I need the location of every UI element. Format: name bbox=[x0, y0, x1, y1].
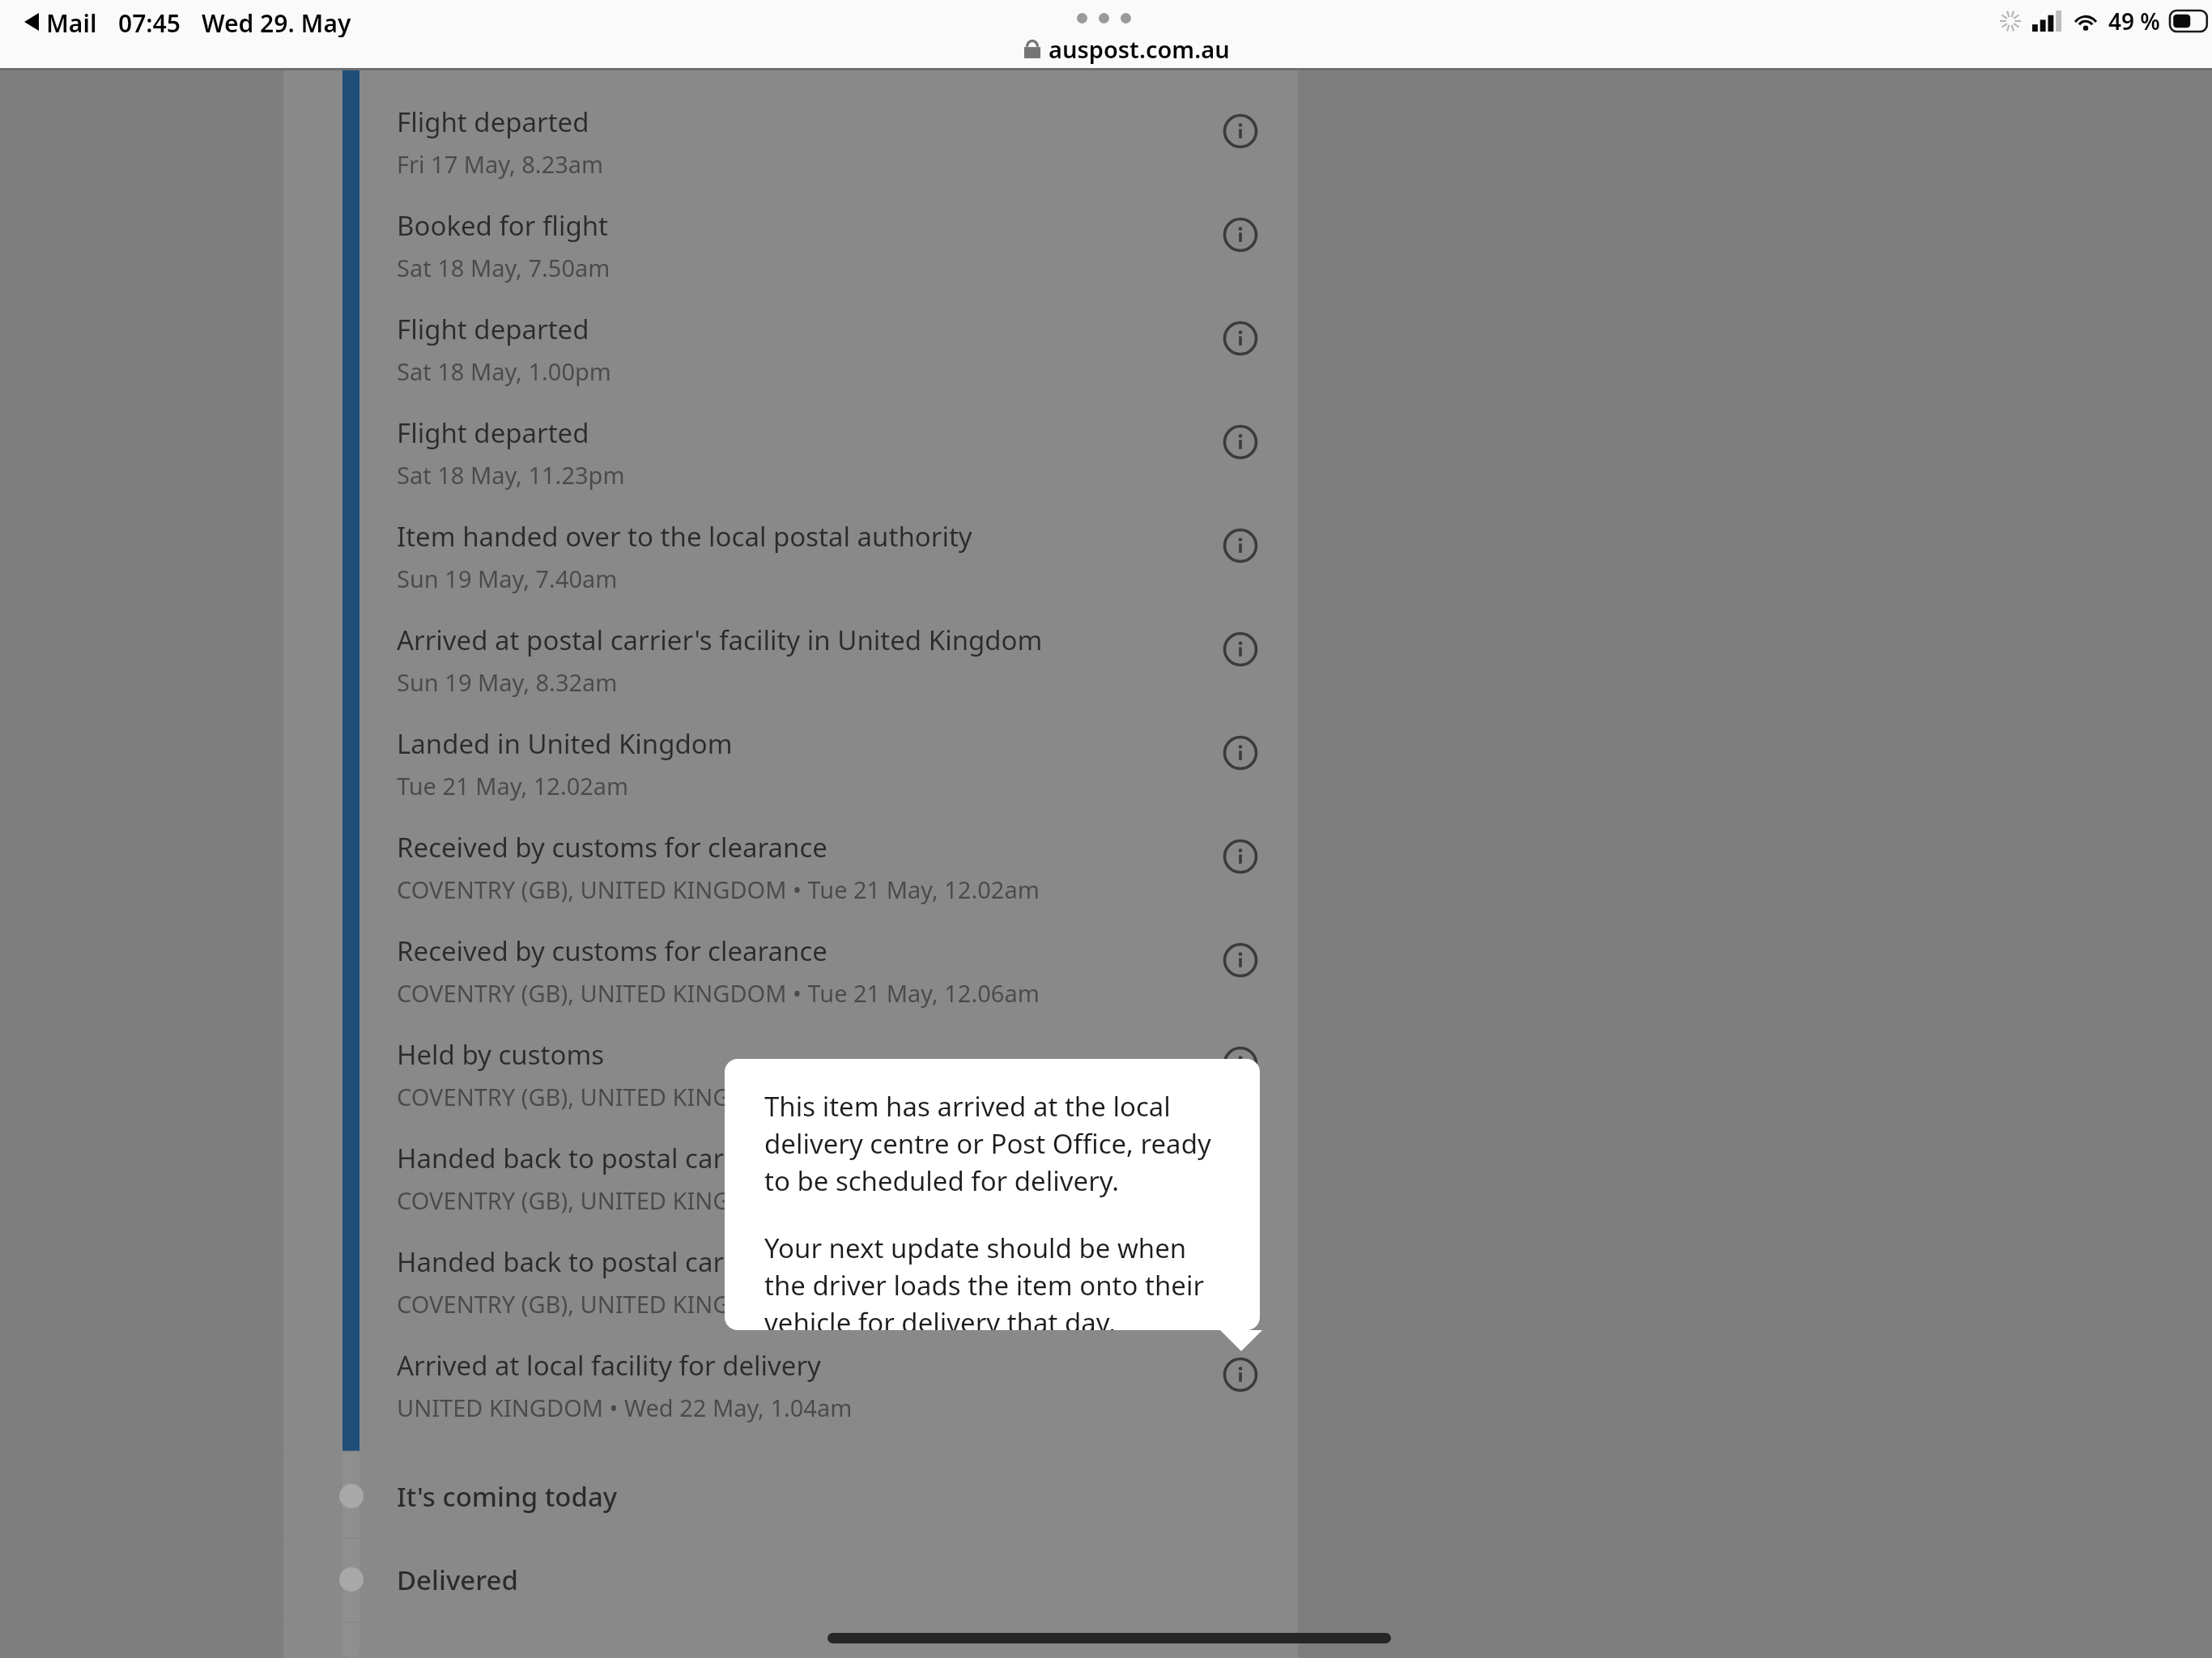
button[interactable]: More information bbox=[1222, 527, 1259, 564]
button[interactable]: This item has arrived at the local deliv… bbox=[725, 1059, 1260, 1330]
staticText: COVENTRY (GB), UNITED KINGDOM • Tue 21 M… bbox=[397, 874, 1040, 905]
button[interactable]: More information bbox=[1222, 631, 1259, 668]
button[interactable]: Flight departed bbox=[359, 406, 1298, 510]
button[interactable]: Booked for flight bbox=[359, 199, 1298, 303]
button[interactable]: Held by customs bbox=[359, 1028, 1298, 1132]
button[interactable]: Handed back to postal carrier fo bbox=[359, 1132, 1298, 1235]
button[interactable]: More information bbox=[1222, 216, 1259, 253]
button[interactable]: More information bbox=[1222, 1045, 1259, 1082]
staticText: Fri 17 May, 8.23am bbox=[397, 148, 604, 180]
button[interactable]: It's coming today bbox=[359, 1454, 1298, 1538]
staticText: Handed back to postal carrier fo bbox=[397, 1243, 801, 1280]
staticText: COVENTRY (GB), UNITED KINGDOM bbox=[397, 1288, 787, 1320]
staticText: It's coming today bbox=[397, 1478, 618, 1515]
staticText: Sat 18 May, 1.00pm bbox=[397, 355, 611, 387]
staticText: Your next update should be when the driv… bbox=[764, 1230, 1227, 1330]
staticText: 07:45 bbox=[118, 6, 181, 37]
staticText: Mail bbox=[46, 6, 97, 37]
button[interactable]: Landed in United Kingdom bbox=[359, 717, 1298, 821]
staticText: Sat 18 May, 11.23pm bbox=[397, 459, 625, 491]
staticText: Delivered bbox=[397, 1562, 518, 1598]
staticText: Arrived at postal carrier's facility in … bbox=[397, 622, 1043, 658]
staticText: COVENTRY (GB), UNITED KINGDOM bbox=[397, 1081, 787, 1112]
staticText: Received by customs for clearance bbox=[397, 933, 827, 969]
button[interactable]: Delivered bbox=[359, 1537, 1298, 1622]
staticText: Flight departed bbox=[397, 311, 589, 347]
button[interactable]: More information bbox=[1222, 1356, 1259, 1393]
staticText: Tue 21 May, 12.02am bbox=[397, 770, 629, 801]
staticText: Landed in United Kingdom bbox=[397, 725, 733, 762]
staticText: Sun 19 May, 7.40am bbox=[397, 563, 618, 594]
button[interactable]: Received by customs for clearance bbox=[359, 925, 1298, 1028]
button[interactable]: Arrived at local facility for delivery bbox=[359, 1339, 1298, 1443]
staticText: Flight departed bbox=[397, 414, 589, 451]
staticText: 49 % bbox=[2108, 6, 2160, 36]
staticText: UNITED KINGDOM • Wed 22 May, 1.04am bbox=[397, 1392, 853, 1423]
button[interactable]: More information bbox=[1222, 838, 1259, 875]
button[interactable]: More information bbox=[1222, 423, 1259, 461]
staticText: Booked for flight bbox=[397, 207, 608, 244]
button[interactable]: Handed back to postal carrier fo bbox=[359, 1235, 1298, 1339]
button[interactable]: Flight departed bbox=[359, 96, 1298, 199]
staticText: Item handed over to the local postal aut… bbox=[397, 518, 972, 555]
staticText: auspost.com.au bbox=[1049, 33, 1230, 65]
button[interactable]: More information bbox=[1222, 113, 1259, 150]
button[interactable]: More information bbox=[1222, 734, 1259, 772]
staticText: This item has arrived at the local deliv… bbox=[764, 1088, 1227, 1199]
button[interactable]: Arrived at postal carrier's facility in … bbox=[359, 614, 1298, 717]
button[interactable]: More information bbox=[1222, 942, 1259, 979]
staticText: COVENTRY (GB), UNITED KINGDOM • Tue 21 M… bbox=[397, 977, 1040, 1009]
staticText: Received by customs for clearance bbox=[397, 829, 827, 865]
button[interactable]: Item handed over to the local postal aut… bbox=[359, 510, 1298, 614]
staticText: Arrived at local facility for delivery bbox=[397, 1347, 821, 1384]
button[interactable]: Mail bbox=[24, 6, 351, 37]
button[interactable]: More information bbox=[1222, 320, 1259, 357]
staticText: Held by customs bbox=[397, 1036, 605, 1073]
staticText: Sun 19 May, 8.32am bbox=[397, 666, 618, 698]
button[interactable]: Received by customs for clearance bbox=[359, 821, 1298, 925]
staticText: COVENTRY (GB), UNITED KINGDOM bbox=[397, 1184, 787, 1216]
staticText: Handed back to postal carrier fo bbox=[397, 1140, 801, 1176]
staticText: Flight departed bbox=[397, 104, 589, 140]
button[interactable]: Flight departed bbox=[359, 303, 1298, 406]
button[interactable]: auspost.com.au bbox=[1024, 32, 1230, 65]
staticText: Wed 29. May bbox=[202, 6, 351, 37]
staticText: Sat 18 May, 7.50am bbox=[397, 252, 610, 283]
